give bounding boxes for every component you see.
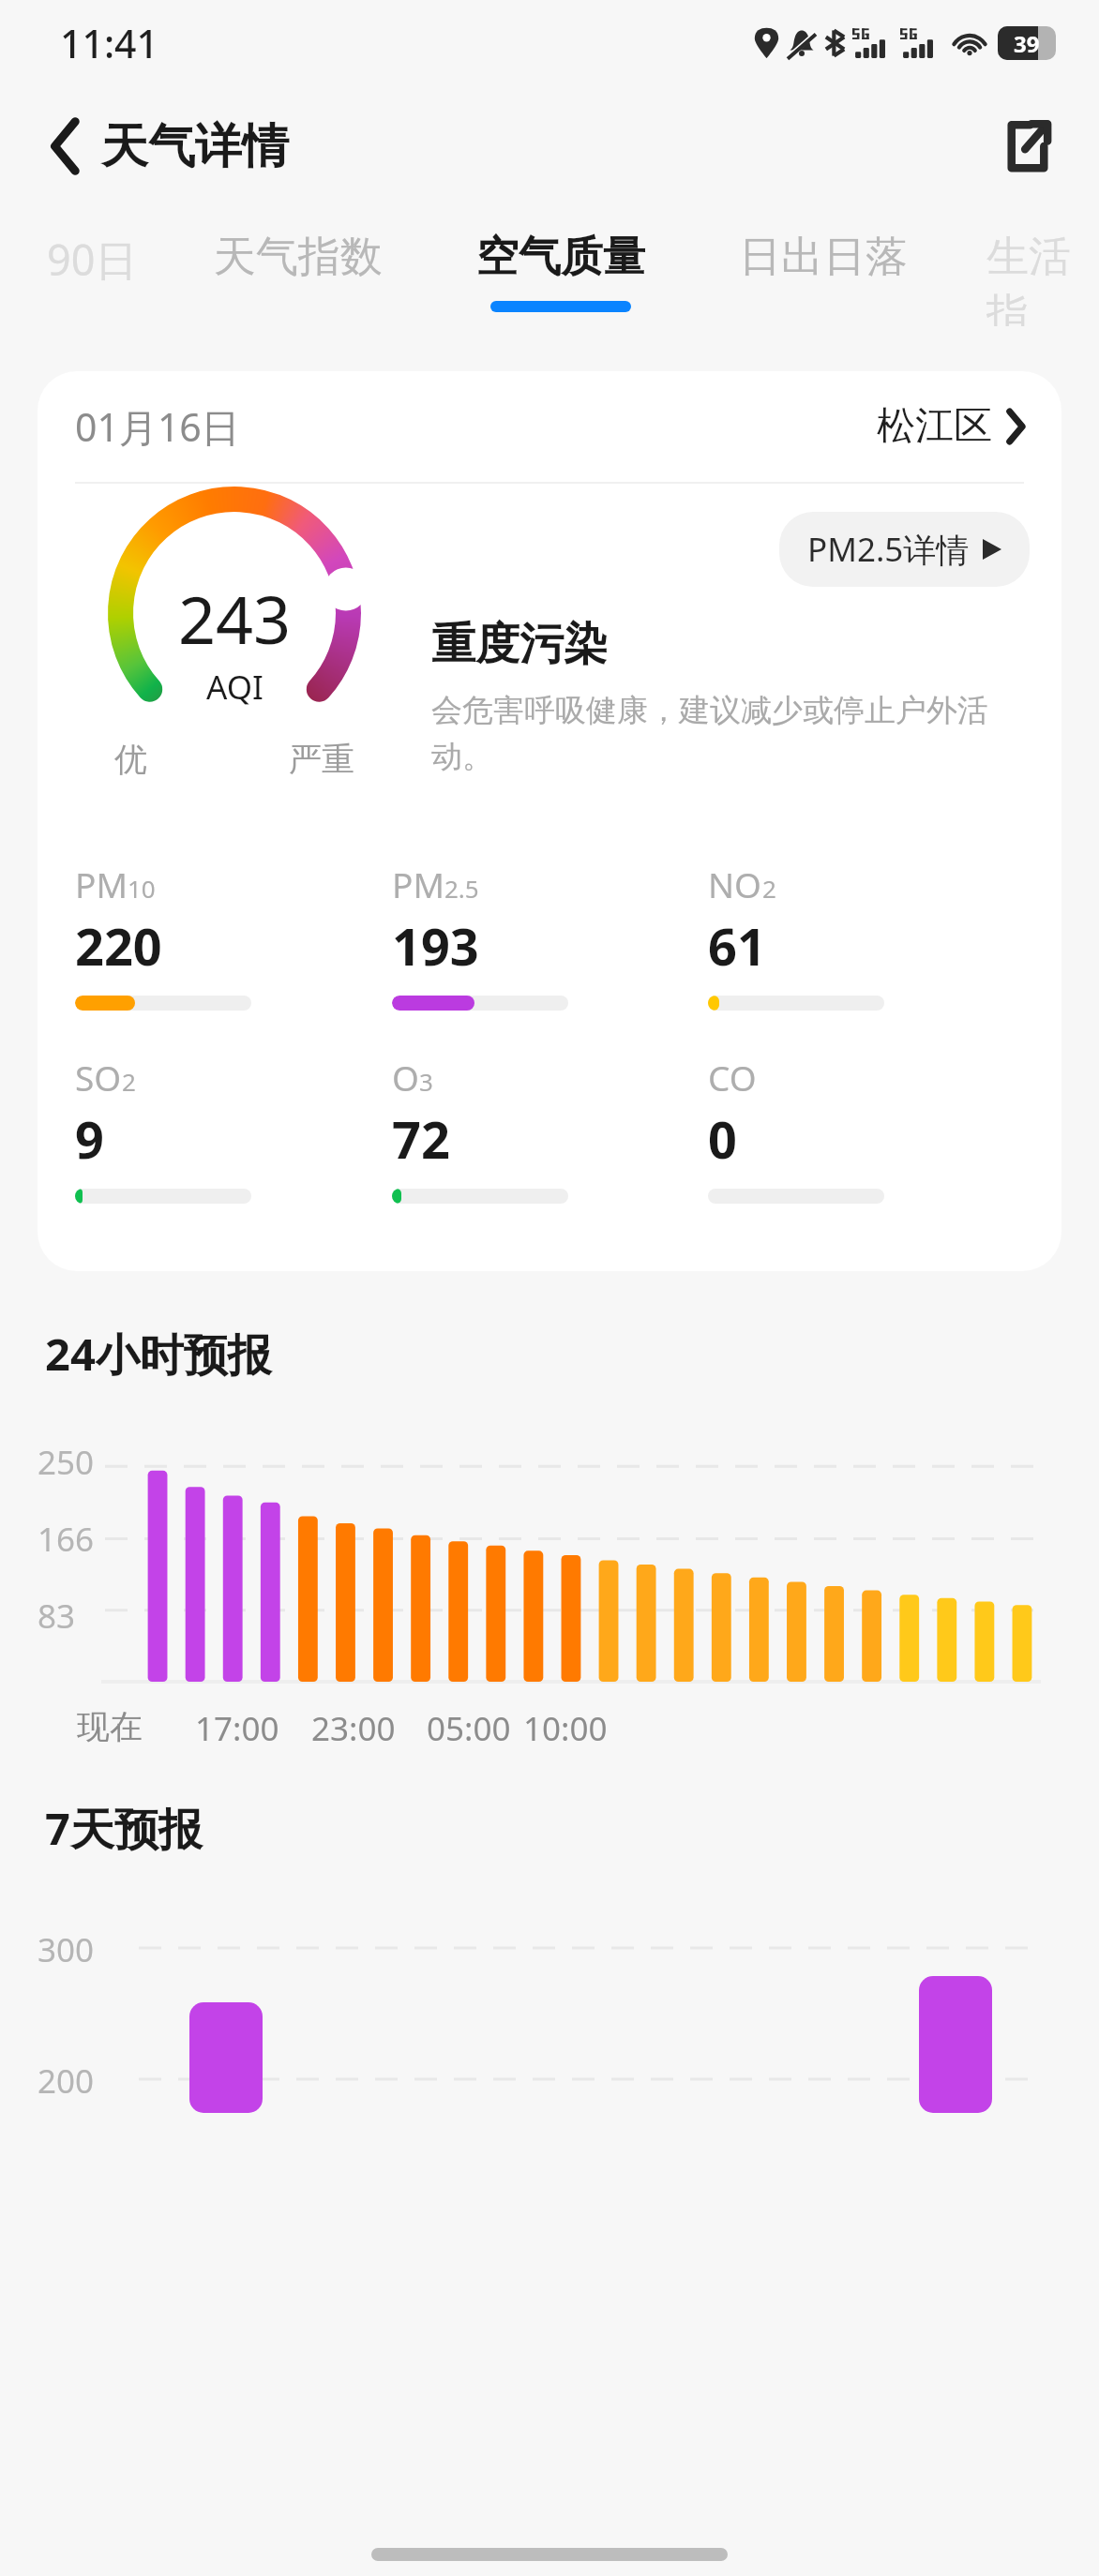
staticText: 7天预报 [45,1798,203,1858]
staticText: 松江区 [877,402,992,451]
staticText: 天气详情 [101,117,289,176]
staticText: 3 [419,1065,433,1098]
staticText: 9 [75,1104,104,1174]
staticText: PM [75,861,128,907]
staticText: SO [75,1054,122,1101]
staticText: 天气指数 [214,231,383,284]
button[interactable]: 90日 [8,206,176,288]
button[interactable]: 生活指 [986,206,1099,326]
staticText: PM [392,861,444,907]
staticText: 现在 [77,1706,143,1747]
staticText: PM2.5详情 [807,527,970,572]
staticText: 10 [128,872,156,905]
staticText: 200 [38,2059,95,2104]
staticText: AQI [206,665,263,710]
staticText: 日出日落 [739,231,908,284]
staticText: CO [708,1054,757,1101]
staticText: 300 [38,1927,95,1972]
staticText: 220 [75,911,162,981]
staticText: 193 [392,911,479,981]
button[interactable]: 空气质量 [461,206,660,312]
staticText: 24小时预报 [45,1324,272,1384]
staticText: 05:00 [427,1706,511,1751]
button[interactable]: 01月16日 [38,371,1061,1271]
staticText: 250 [38,1440,95,1485]
staticText: 39 [1014,28,1040,59]
button[interactable]: 松江区 [877,402,1024,451]
staticText: 10:00 [523,1706,608,1751]
staticText: 11:41 [60,17,158,69]
button[interactable]: PM2.5详情 [779,512,1030,587]
staticText: 空气质量 [476,231,645,284]
staticText: 0 [708,1104,737,1174]
staticText: 23:00 [311,1706,396,1751]
staticText: 重度污染 [431,617,608,672]
staticText: 严重 [289,739,354,780]
staticText: O [392,1054,419,1101]
staticText: 61 [708,911,766,981]
staticText: 优 [114,739,147,780]
staticText: 2.5 [444,872,479,905]
staticText: 166 [38,1517,95,1562]
staticText: 83 [38,1594,76,1639]
button[interactable]: 日出日落 [724,206,923,284]
staticText: 2 [762,872,776,905]
staticText: 会危害呼吸健康，建议减少或停止户外活动。 [431,691,1030,776]
staticText: 生活指 [986,231,1099,326]
staticText: 01月16日 [75,400,240,453]
staticText: 90日 [47,231,138,288]
staticText: 2 [122,1065,136,1098]
button[interactable]: Back [23,103,109,189]
staticText: NO [708,861,762,907]
staticText: 17:00 [195,1706,279,1751]
button[interactable]: 天气指数 [199,206,398,284]
staticText: 243 [178,574,292,663]
staticText: 72 [392,1104,450,1174]
button[interactable]: Share [985,103,1071,189]
